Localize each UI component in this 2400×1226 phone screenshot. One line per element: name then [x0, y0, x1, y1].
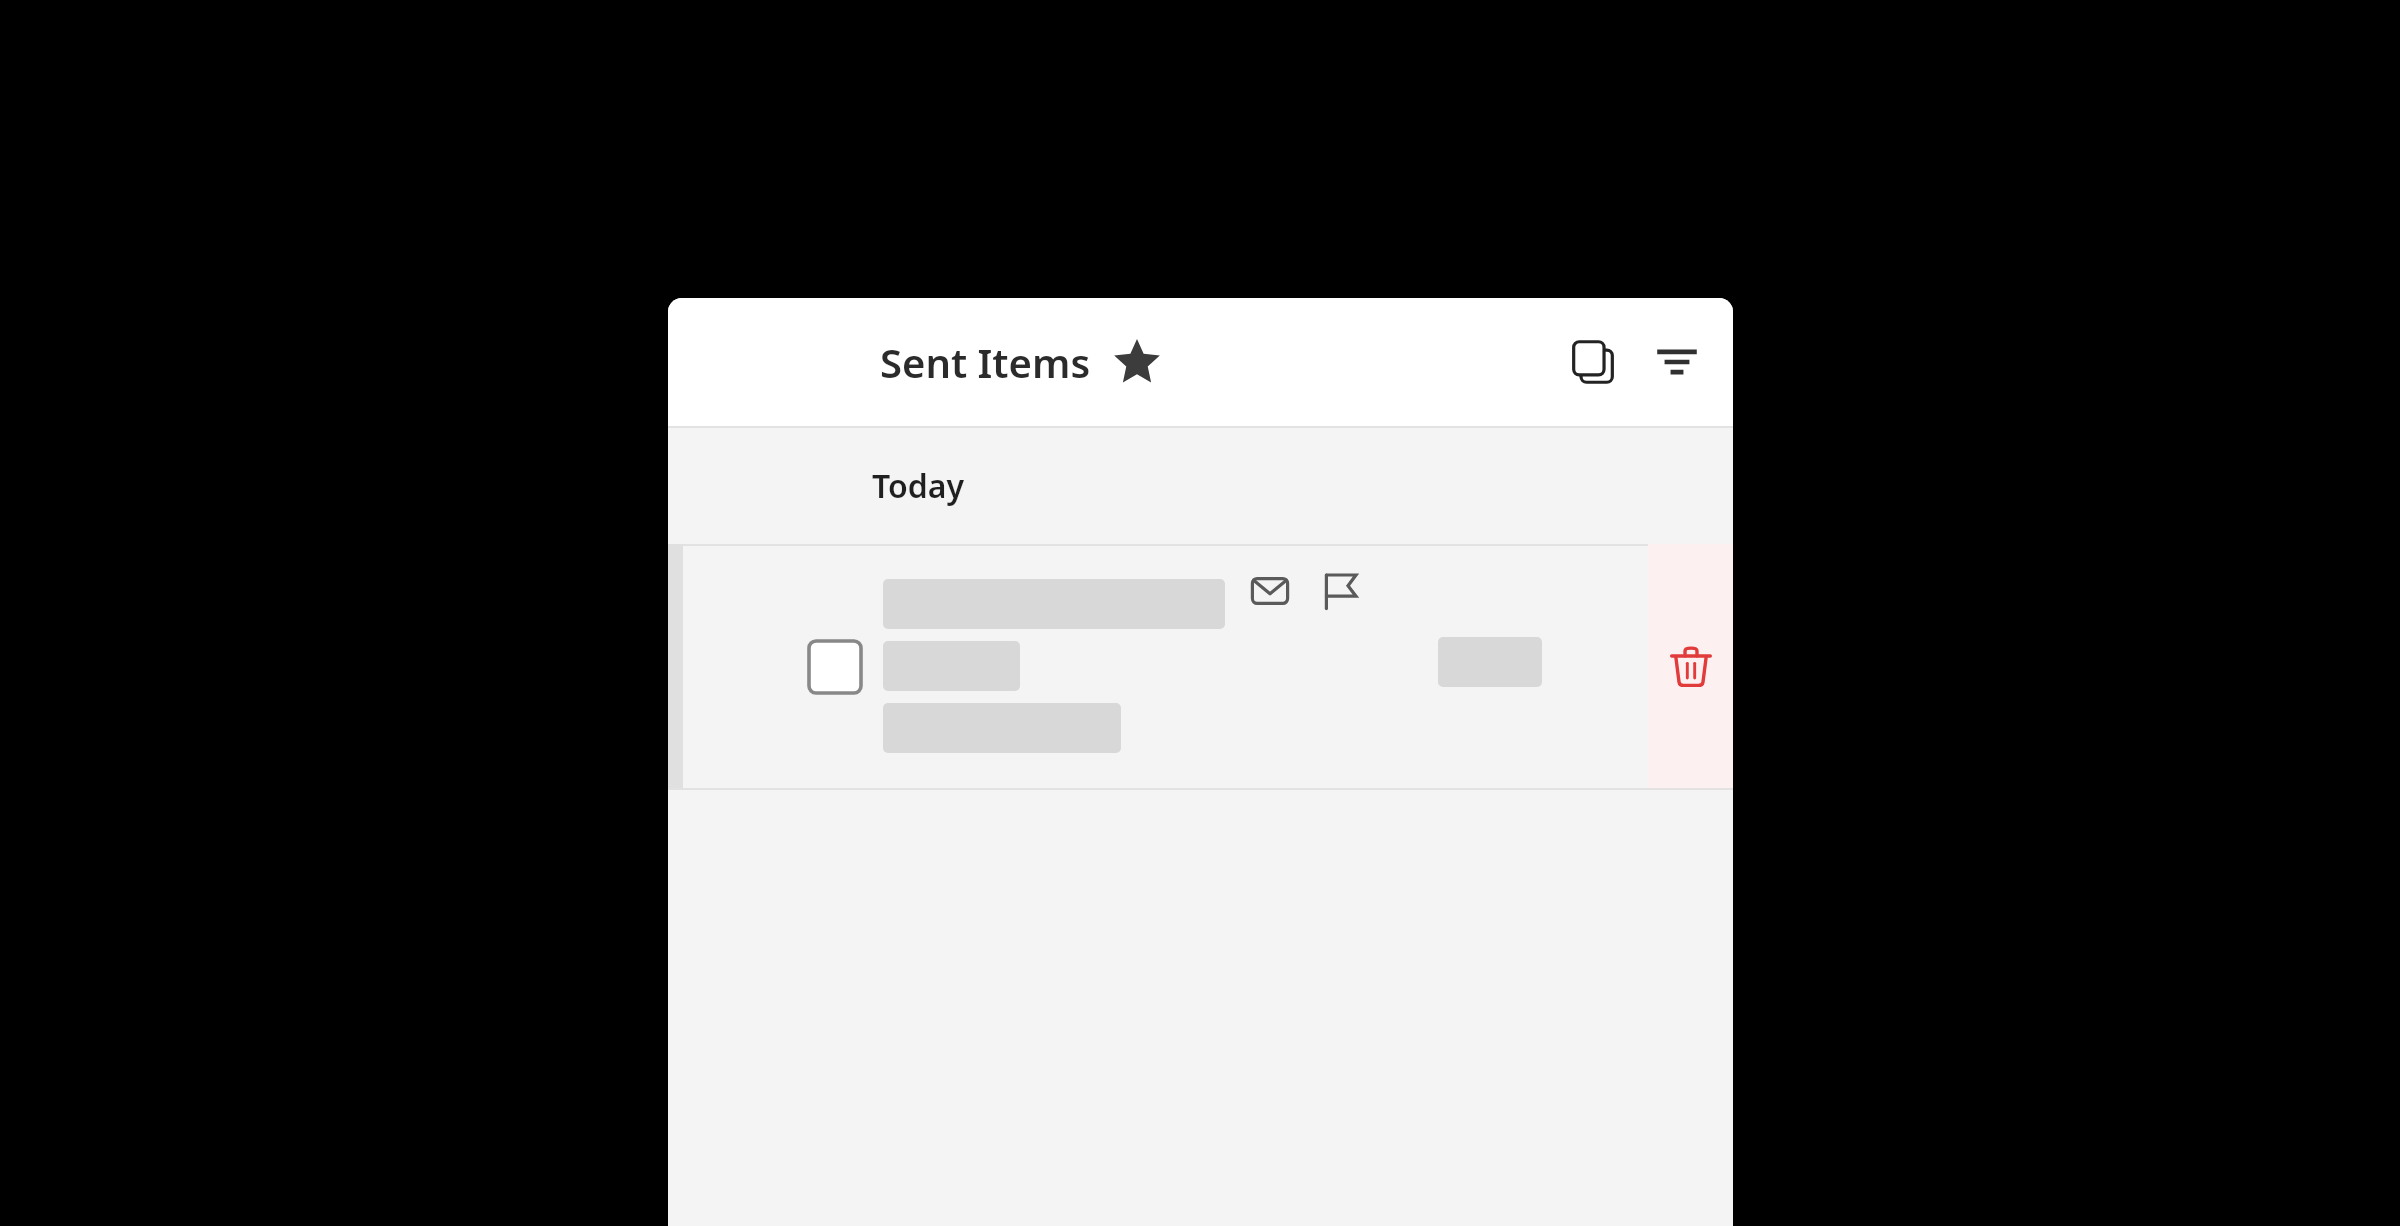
button[interactable]: Mark as unread: [1239, 560, 1301, 622]
button[interactable]: Switch view: [1551, 320, 1635, 404]
button[interactable]: Delete: [1648, 544, 1733, 790]
button[interactable]: Flag message: [1309, 560, 1371, 622]
button[interactable]: Sent Items: [868, 327, 1173, 397]
button[interactable]: Select message: [683, 544, 1663, 790]
button[interactable]: Select message: [809, 641, 861, 693]
staticText: Sent Items: [880, 335, 1091, 389]
button[interactable]: Filter: [1635, 320, 1719, 404]
staticText: Today: [872, 464, 965, 508]
